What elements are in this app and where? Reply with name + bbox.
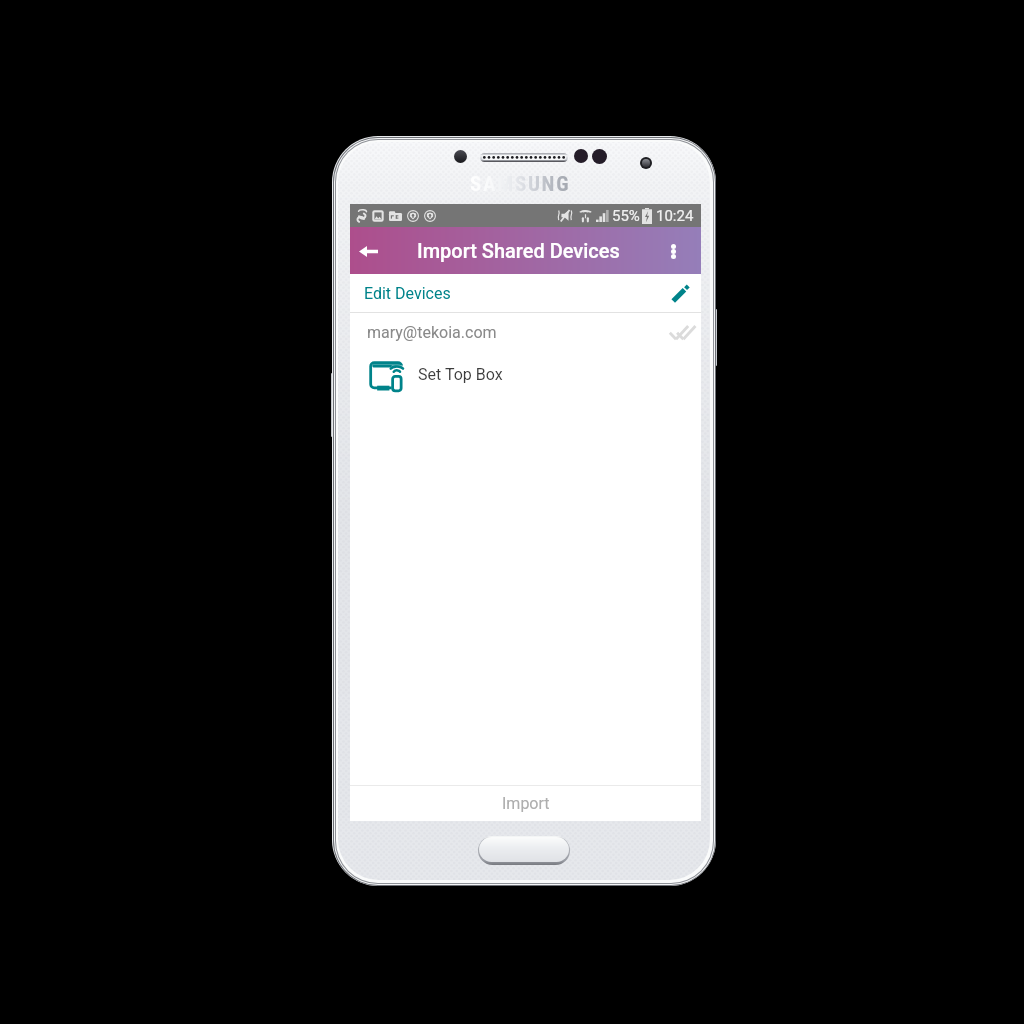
button[interactable]: Back	[350, 232, 386, 270]
button[interactable]: Volume	[331, 373, 333, 437]
staticText: mary@tekoia.com	[367, 323, 497, 342]
staticText: 10:24	[656, 207, 694, 225]
button[interactable]: Power	[715, 309, 717, 366]
button[interactable]: More options	[655, 233, 691, 269]
button[interactable]: Home	[478, 836, 570, 865]
button[interactable]: mary@tekoia.com	[350, 313, 701, 351]
staticText: Import Shared Devices	[417, 239, 620, 262]
staticText: Import	[502, 794, 550, 813]
staticText: Set Top Box	[418, 365, 503, 384]
staticText: Edit Devices	[364, 284, 451, 303]
staticText: 55%	[612, 207, 640, 225]
button[interactable]: Edit Devices	[350, 274, 701, 312]
button[interactable]: Import	[350, 786, 701, 821]
staticText: SAMSUNG	[470, 172, 571, 197]
button[interactable]: Set Top Box	[350, 351, 701, 397]
